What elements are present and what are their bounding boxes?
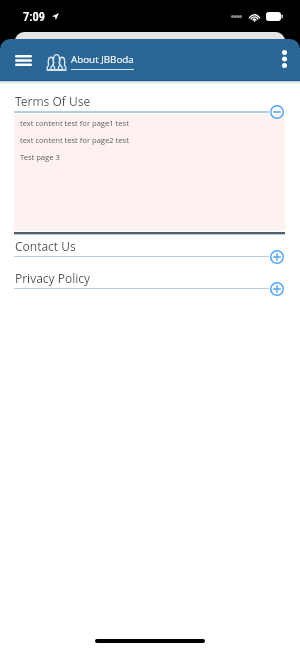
staticText: 7:09 <box>23 9 46 24</box>
staticText: About JBBoda <box>71 53 134 66</box>
staticText: Privacy Policy <box>15 270 91 286</box>
button[interactable]: More options <box>270 45 298 73</box>
button[interactable] <box>14 235 285 258</box>
staticText: text content test for page2 test <box>20 135 129 145</box>
button[interactable] <box>14 90 285 113</box>
staticText: text content test for page1 test <box>20 118 129 128</box>
staticText: Test page 3 <box>20 152 60 162</box>
button[interactable] <box>14 267 285 290</box>
button[interactable]: Expand Contact Us <box>270 250 284 264</box>
staticText: Contact Us <box>15 238 76 254</box>
button[interactable]: Collapse Terms Of Use <box>270 105 284 119</box>
staticText: Terms Of Use <box>15 93 91 109</box>
button[interactable]: Open navigation menu <box>9 46 38 75</box>
button[interactable]: Expand Privacy Policy <box>270 282 284 296</box>
